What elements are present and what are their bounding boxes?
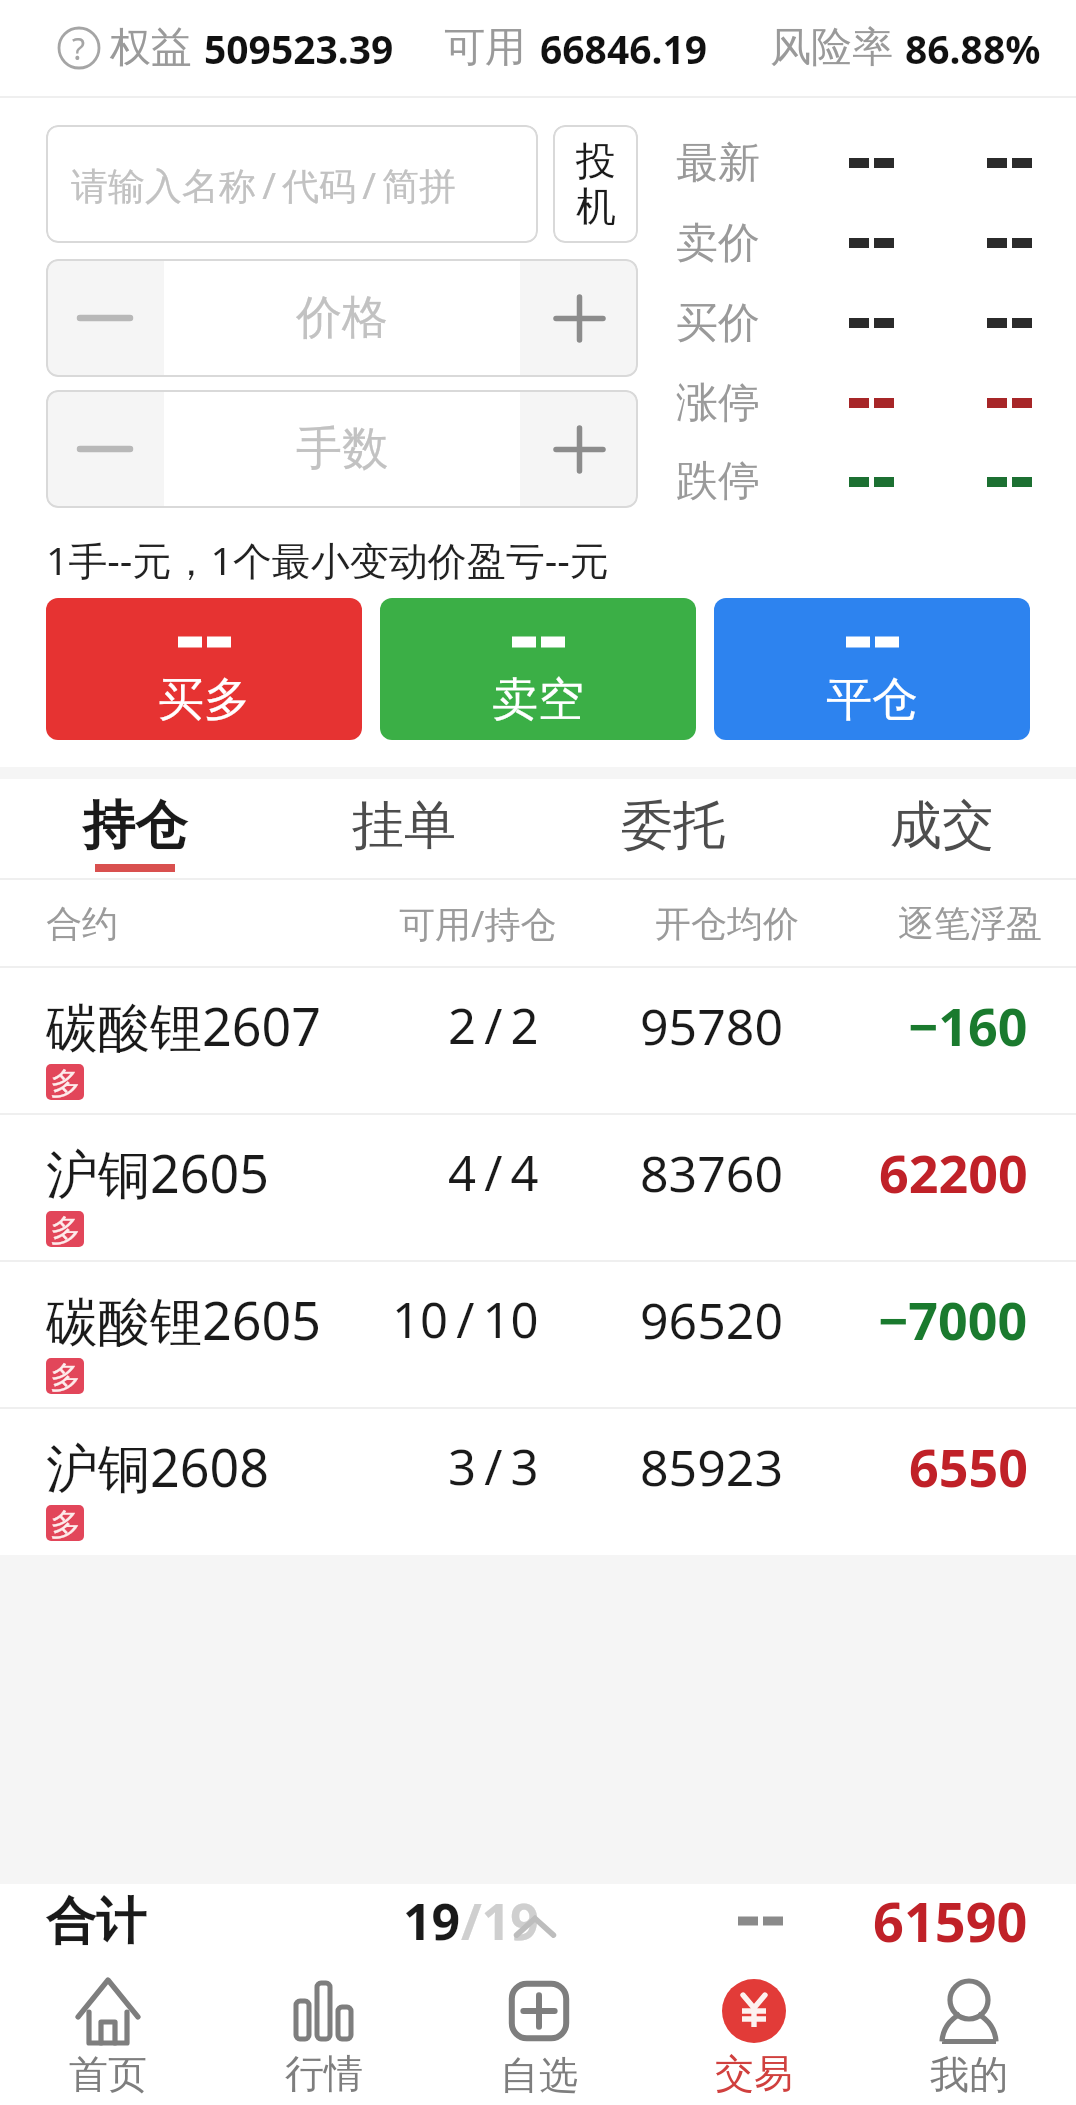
- button[interactable]: 请输入名称 / 代码 / 简拼: [46, 125, 538, 243]
- staticText: 2 / 2: [448, 992, 539, 1059]
- staticText: 83760: [640, 1139, 783, 1207]
- staticText: 风险率: [770, 22, 893, 74]
- button[interactable]: 委托: [538, 779, 807, 878]
- staticText: 多: [50, 1211, 81, 1247]
- staticText: 持仓: [83, 793, 187, 859]
- staticText: 请输入名称 / 代码 / 简拼: [71, 159, 457, 210]
- staticText: 可用: [444, 22, 526, 74]
- button[interactable]: 投 机: [553, 125, 638, 243]
- staticText: 61590: [873, 1884, 1028, 1958]
- button[interactable]: 挂单: [269, 779, 538, 878]
- staticText: 沪铜2605: [46, 1137, 269, 1208]
- staticText: −160: [908, 990, 1028, 1061]
- staticText: 卖价: [676, 217, 760, 270]
- button[interactable]: 沪铜2605: [0, 1115, 1076, 1262]
- staticText: 95780: [640, 992, 783, 1060]
- staticText: 最新: [676, 137, 760, 190]
- staticText: 86.88%: [905, 22, 1041, 75]
- staticText: 多: [50, 1358, 81, 1394]
- staticText: 6550: [909, 1431, 1028, 1502]
- staticText: 手数: [296, 420, 388, 478]
- button[interactable]: Help: [58, 27, 100, 69]
- button[interactable]: Trade: [646, 1958, 861, 2105]
- staticText: 首页: [69, 2050, 147, 2099]
- staticText: 碳酸锂2607: [46, 990, 321, 1061]
- staticText: ?: [72, 28, 86, 69]
- staticText: 合计: [46, 1890, 146, 1953]
- staticText: /19: [461, 1887, 539, 1955]
- button[interactable]: Collapse positions: [513, 1907, 557, 1951]
- button[interactable]: 自选: [431, 1958, 646, 2105]
- staticText: 62200: [879, 1137, 1028, 1208]
- button[interactable]: 行情: [216, 1958, 431, 2105]
- button[interactable]: 持仓: [0, 779, 269, 878]
- staticText: −7000: [878, 1284, 1028, 1355]
- staticText: 逐笔浮盈: [898, 901, 1042, 946]
- staticText: 挂单: [352, 793, 456, 859]
- staticText: 1手--元，1个最小变动价盈亏--元: [46, 533, 609, 586]
- staticText: 卖空: [492, 671, 584, 729]
- staticText: 85923: [640, 1433, 783, 1501]
- staticText: 10 / 10: [392, 1286, 539, 1353]
- button[interactable]: 买多: [46, 598, 362, 740]
- staticText: 多: [50, 1505, 81, 1541]
- staticText: 自选: [500, 2051, 578, 2100]
- button[interactable]: 沪铜2608: [0, 1409, 1076, 1555]
- staticText: 碳酸锂2605: [46, 1284, 321, 1355]
- button[interactable]: Decrease: [46, 259, 164, 377]
- staticText: 可用/持仓: [399, 899, 557, 948]
- staticText: 沪铜2608: [46, 1431, 269, 1502]
- button[interactable]: 卖空: [380, 598, 696, 740]
- staticText: 买多: [158, 671, 250, 729]
- staticText: 成交: [890, 793, 994, 859]
- button[interactable]: 碳酸锂2605: [0, 1262, 1076, 1409]
- staticText: 96520: [640, 1286, 783, 1354]
- staticText: 66846.19: [540, 22, 708, 75]
- staticText: 平仓: [826, 671, 918, 729]
- button[interactable]: 成交: [807, 779, 1076, 878]
- staticText: 19: [403, 1887, 461, 1955]
- staticText: 合约: [46, 901, 118, 946]
- staticText: 3 / 3: [448, 1433, 539, 1500]
- staticText: 买价: [676, 297, 760, 350]
- staticText: 我的: [930, 2050, 1008, 2099]
- staticText: 涨停: [676, 377, 760, 430]
- button[interactable]: 我的: [861, 1958, 1076, 2105]
- staticText: 交易: [715, 2049, 793, 2098]
- staticText: 价格: [296, 289, 388, 347]
- staticText: 4 / 4: [448, 1139, 539, 1206]
- staticText: 跌停: [676, 455, 760, 508]
- button[interactable]: 手数: [164, 390, 520, 508]
- button[interactable]: 平仓: [714, 598, 1030, 740]
- button[interactable]: Decrease: [46, 390, 164, 508]
- staticText: 开仓均价: [655, 901, 799, 946]
- button[interactable]: 首页: [0, 1958, 216, 2105]
- staticText: 投 机: [576, 136, 616, 232]
- button[interactable]: Increase: [520, 390, 638, 508]
- button[interactable]: 碳酸锂2607: [0, 968, 1076, 1115]
- staticText: 权益: [110, 22, 192, 74]
- staticText: 509523.39: [204, 22, 394, 75]
- button[interactable]: Increase: [520, 259, 638, 377]
- staticText: 行情: [285, 2049, 363, 2098]
- other: Trade: [722, 1979, 786, 2043]
- staticText: 多: [50, 1064, 81, 1100]
- button[interactable]: 价格: [164, 259, 520, 377]
- staticText: 委托: [621, 793, 725, 859]
